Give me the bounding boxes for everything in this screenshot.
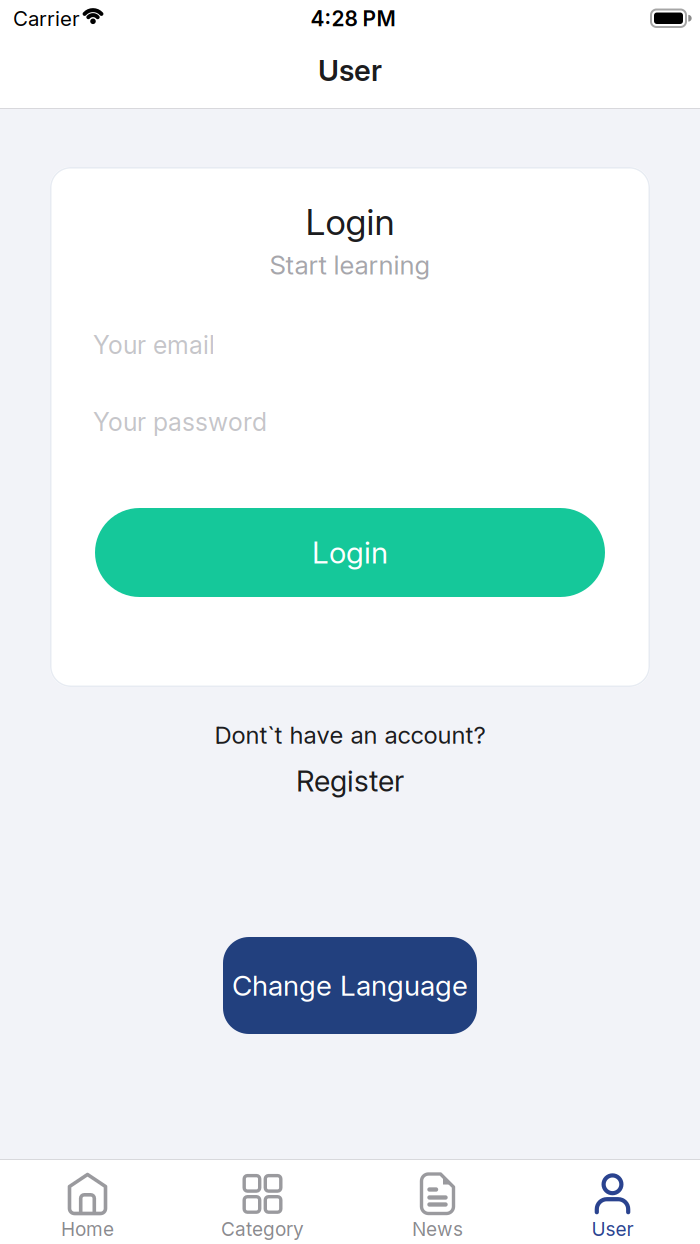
staticText: Register [296,764,404,798]
button[interactable]: Change Language [223,937,477,1034]
staticText: Start learning [269,250,430,280]
button[interactable]: Home [0,1160,175,1244]
button[interactable]: Category [175,1160,350,1244]
staticText: User [318,53,382,88]
staticText: Login [312,535,388,570]
button[interactable]: News [350,1160,525,1244]
staticText: Category [221,1218,304,1240]
staticText: User [591,1218,633,1240]
staticText: Change Language [232,969,468,1002]
button[interactable]: Register [296,763,404,799]
button[interactable]: Dont`t have an account? [214,720,485,750]
staticText: Carrier [13,6,80,31]
staticText: Your password [93,407,267,437]
staticText: Dont`t have an account? [214,721,485,749]
staticText: News [412,1218,463,1240]
button[interactable]: Login [95,508,605,597]
staticText: Login [305,201,394,243]
staticText: Home [61,1218,114,1240]
button[interactable]: User [525,1160,700,1244]
staticText: Your email [93,330,215,360]
staticText: 4:28 PM [310,6,395,31]
